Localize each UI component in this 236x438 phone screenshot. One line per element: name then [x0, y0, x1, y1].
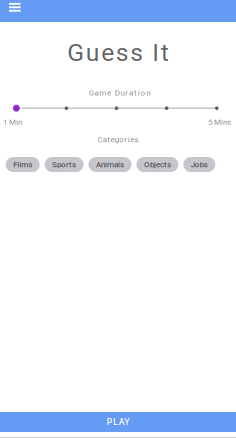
staticText: 5 Mins [208, 117, 231, 127]
staticText: Jobs [191, 160, 208, 169]
staticText: Objects [144, 160, 171, 169]
staticText: Animals [96, 160, 124, 169]
staticText: Guess It [67, 38, 169, 67]
button[interactable]: Animals [88, 157, 131, 172]
button[interactable]: Films [6, 157, 40, 172]
staticText: Films [13, 160, 32, 169]
button[interactable]: Sports [45, 157, 84, 172]
staticText: PLAY [107, 417, 129, 427]
staticText: 1 Min [3, 117, 22, 127]
staticText: Sports [52, 160, 76, 169]
staticText: Game Duration [89, 88, 150, 97]
button[interactable]: PLAY [0, 412, 236, 432]
staticText: Categories [97, 135, 138, 144]
button[interactable]: Open menu [0, 0, 30, 22]
button[interactable]: Jobs [183, 157, 215, 172]
button[interactable]: Objects [136, 157, 178, 172]
